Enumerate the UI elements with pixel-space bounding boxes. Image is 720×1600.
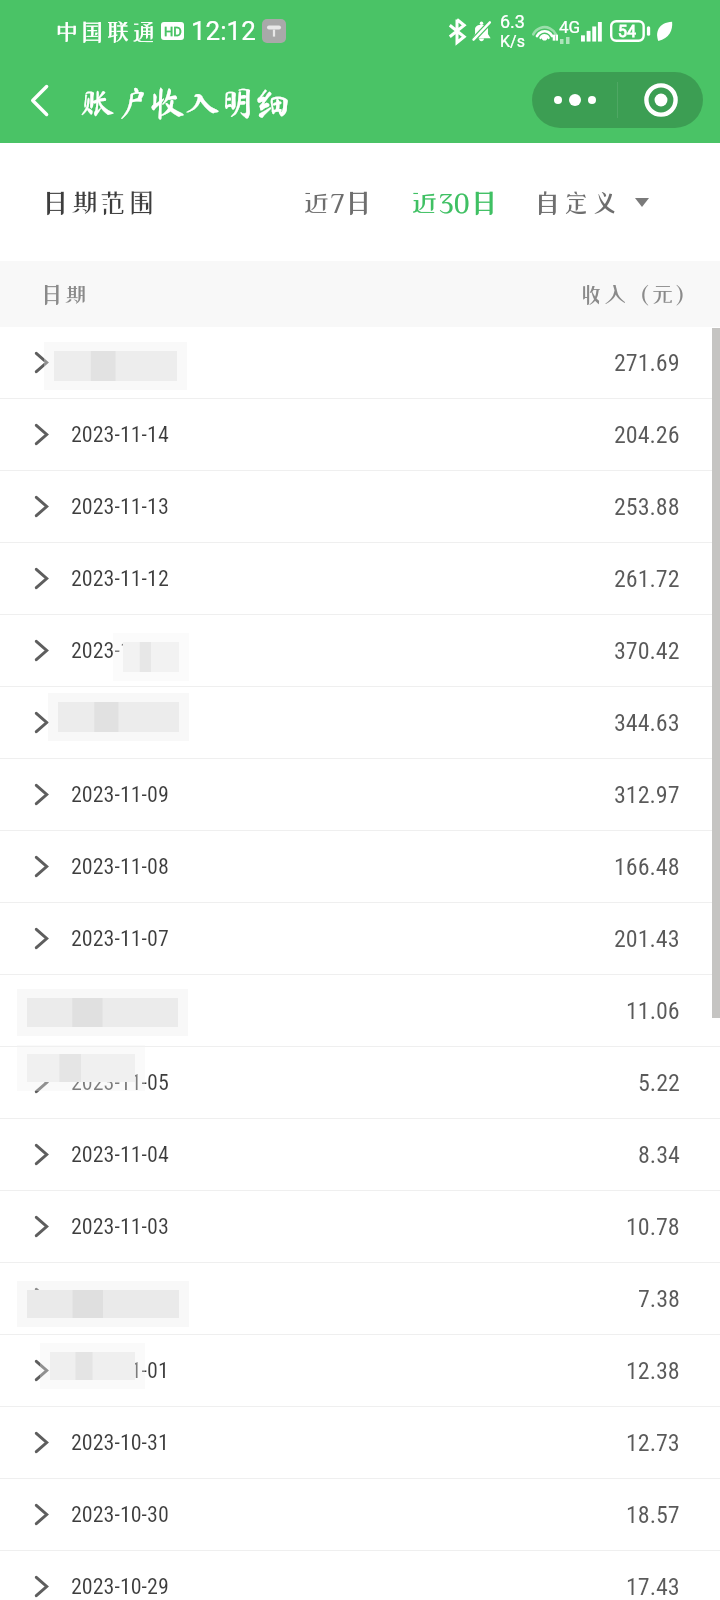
staticText: 10.78 xyxy=(626,1213,680,1241)
button[interactable]: 2023-11-08 xyxy=(0,831,720,902)
staticText: 2023-11-09 xyxy=(71,782,169,808)
staticText: 6.3 xyxy=(500,11,525,32)
button[interactable]: More options xyxy=(532,72,617,128)
staticText: 2023-11-01 xyxy=(71,1358,169,1384)
button[interactable]: 2023-11-02 xyxy=(0,1263,720,1334)
staticText: 近30日 xyxy=(410,188,499,216)
staticText: 12.73 xyxy=(626,1429,680,1457)
staticText: 2023-11-12 xyxy=(71,566,169,592)
staticText: 12:12 xyxy=(191,16,256,46)
button[interactable]: 近7日 xyxy=(302,164,373,240)
staticText: 5.22 xyxy=(638,1069,680,1097)
staticText: 312.97 xyxy=(614,781,680,809)
staticText: 166.48 xyxy=(614,853,680,881)
staticText: 2023-11-07 xyxy=(71,926,169,952)
button[interactable]: 2023-11-12 xyxy=(0,543,720,614)
staticText: 日期范围 xyxy=(41,188,156,216)
staticText: 2023-11-08 xyxy=(71,854,169,880)
staticText: 账户收入明细 xyxy=(80,85,291,120)
staticText: 2023-11-11 xyxy=(71,638,169,664)
staticText: 2023-11-14 xyxy=(71,422,169,448)
button[interactable]: 2023-10-29 xyxy=(0,1551,720,1600)
button[interactable]: 2023-11-07 xyxy=(0,903,720,974)
button[interactable]: 2023-11-14 xyxy=(0,399,720,470)
button[interactable]: 2023-11-10 xyxy=(0,687,720,758)
staticText: 7.38 xyxy=(638,1285,680,1313)
staticText: 4G xyxy=(559,17,581,37)
staticText: K/s xyxy=(500,32,525,51)
staticText: 370.42 xyxy=(614,637,680,665)
staticText: 自定义 xyxy=(533,188,620,216)
button[interactable]: 2023-11-15 xyxy=(0,327,720,398)
staticText: HD xyxy=(164,24,182,39)
button[interactable]: Back xyxy=(11,72,67,128)
button[interactable]: 2023-11-03 xyxy=(0,1191,720,1262)
staticText: 近7日 xyxy=(302,188,373,216)
button[interactable]: 自定义 xyxy=(533,164,649,240)
staticText: 12.38 xyxy=(626,1357,680,1385)
staticText: 2023-10-31 xyxy=(71,1430,169,1456)
staticText: 2023-11-05 xyxy=(71,1070,169,1096)
button[interactable]: 2023-11-13 xyxy=(0,471,720,542)
staticText: 54 xyxy=(618,22,636,41)
staticText: 2023-11-03 xyxy=(71,1214,169,1240)
staticText: 2023-11-10 xyxy=(71,710,169,736)
button[interactable]: 2023-11-11 xyxy=(0,615,720,686)
button[interactable]: Close xyxy=(618,72,703,128)
staticText: 收入（元） xyxy=(580,283,698,306)
button[interactable]: 2023-11-04 xyxy=(0,1119,720,1190)
button[interactable]: 2023-10-30 xyxy=(0,1479,720,1550)
staticText: 204.26 xyxy=(614,421,680,449)
staticText: 2023-10-29 xyxy=(71,1574,169,1600)
staticText: 201.43 xyxy=(614,925,680,953)
staticText: 2023-11-13 xyxy=(71,494,169,520)
button[interactable]: 2023-11-09 xyxy=(0,759,720,830)
staticText: 261.72 xyxy=(614,565,680,593)
staticText: 中国联通 xyxy=(54,19,157,44)
staticText: 2023-11-15 xyxy=(71,350,169,376)
staticText: 11.06 xyxy=(626,997,680,1025)
button[interactable]: 2023-11-05 xyxy=(0,1047,720,1118)
staticText: 2023-11-04 xyxy=(71,1142,169,1168)
staticText: 18.57 xyxy=(626,1501,680,1529)
staticText: 2023-11-06 xyxy=(71,998,169,1024)
button[interactable]: 2023-11-06 xyxy=(0,975,720,1046)
staticText: 2023-10-30 xyxy=(71,1502,169,1528)
staticText: 8.34 xyxy=(638,1141,680,1169)
staticText: 344.63 xyxy=(614,709,680,737)
staticText: 17.43 xyxy=(626,1573,680,1600)
button[interactable]: 2023-11-01 xyxy=(0,1335,720,1406)
staticText: 日期 xyxy=(40,283,88,306)
button[interactable]: 2023-10-31 xyxy=(0,1407,720,1478)
button[interactable]: 近30日 xyxy=(410,164,499,240)
staticText: 271.69 xyxy=(614,349,680,377)
staticText: 2023-11-02 xyxy=(71,1286,169,1312)
staticText: 253.88 xyxy=(614,493,680,521)
